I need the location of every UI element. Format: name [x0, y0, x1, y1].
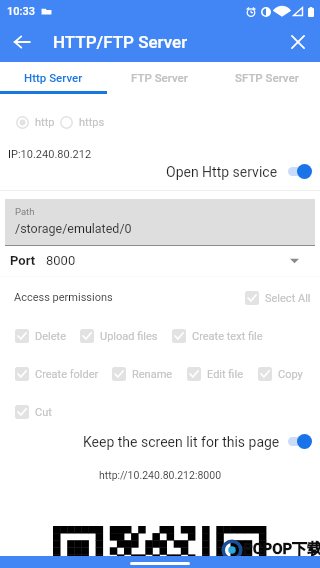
button[interactable]: Select All [245, 291, 311, 305]
staticText: HTTP/FTP Server [53, 32, 188, 52]
button[interactable]: Keep the screen lit for this page [0, 431, 320, 452]
staticText: Open Http service [166, 164, 278, 180]
button[interactable]: Select All [245, 291, 311, 305]
button[interactable]: Http Server [0, 62, 106, 94]
button[interactable]: Path [5, 199, 315, 245]
staticText: Port [10, 253, 36, 268]
staticText: Cut [35, 406, 52, 419]
button[interactable]: Cut [15, 405, 52, 419]
button[interactable]: Upload files [80, 329, 158, 343]
staticText: Keep the screen lit for this page [83, 434, 280, 450]
staticText: Delete [35, 330, 66, 343]
button[interactable]: Edit file [187, 367, 243, 381]
button[interactable]: Open Http service [0, 161, 320, 182]
staticText: Create text file [192, 330, 263, 343]
button[interactable]: Copy [258, 367, 303, 381]
staticText: 8000 [46, 253, 76, 268]
button[interactable]: FTP Server [106, 62, 213, 94]
button[interactable]: Port [0, 251, 320, 269]
staticText: Path [15, 206, 35, 217]
staticText: Create folder [35, 368, 99, 381]
staticText: SFTP Server [235, 71, 299, 84]
staticText: 10:33 [7, 5, 35, 18]
button[interactable]: Delete [15, 329, 66, 343]
staticText: https [79, 116, 105, 129]
button[interactable]: http [15, 115, 55, 130]
staticText: Rename [132, 368, 173, 381]
staticText: Select All [265, 292, 311, 305]
button[interactable]: Close [282, 26, 314, 58]
button[interactable]: Rename [112, 367, 173, 381]
staticText: Upload files [100, 330, 158, 343]
staticText: Copy [278, 368, 303, 381]
staticText: PCPOP下载 [243, 540, 320, 559]
button[interactable]: Create folder [15, 367, 99, 381]
staticText: Edit file [207, 368, 243, 381]
button[interactable]: Create text file [172, 329, 263, 343]
staticText: FTP Server [131, 71, 188, 84]
button[interactable]: https [59, 115, 105, 130]
staticText: http://10.240.80.212:8000 [99, 469, 222, 481]
staticText: http [35, 116, 55, 129]
staticText: Http Server [24, 71, 83, 84]
staticText: /storage/emulated/0 [15, 221, 132, 236]
button[interactable]: Back [6, 26, 38, 58]
staticText: IP:10.240.80.212 [8, 148, 92, 161]
staticText: Access permissions [14, 291, 113, 304]
button[interactable]: SFTP Server [213, 62, 320, 94]
